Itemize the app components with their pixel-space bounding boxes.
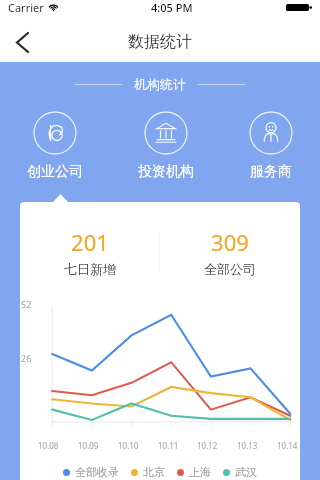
staticText: 10.08: [38, 440, 59, 451]
button[interactable]: 服务商: [243, 109, 299, 183]
button[interactable]: 上海: [177, 463, 211, 480]
staticText: 服务商: [250, 163, 292, 181]
staticText: 52: [21, 298, 32, 310]
button[interactable]: 全部收录: [63, 463, 119, 480]
staticText: 武汉: [235, 465, 257, 479]
staticText: 10.11: [158, 440, 179, 451]
staticText: 201: [71, 227, 109, 257]
staticText: 数据统计: [128, 32, 192, 52]
button[interactable]: 武汉: [223, 463, 257, 480]
staticText: Carrier: [8, 0, 44, 15]
button[interactable]: 北京: [131, 463, 165, 480]
staticText: 机构统计: [134, 76, 186, 92]
button[interactable]: 创业公司: [21, 109, 89, 183]
staticText: 北京: [143, 465, 165, 479]
staticText: 全部收录: [75, 465, 119, 479]
button[interactable]: 201: [20, 227, 159, 277]
staticText: 全部公司: [204, 261, 256, 277]
staticText: 投资机构: [138, 163, 194, 181]
staticText: 上海: [189, 465, 211, 479]
staticText: 10.14: [277, 440, 298, 451]
staticText: 26: [21, 352, 32, 364]
button[interactable]: 投资机构: [132, 109, 200, 183]
staticText: 10.12: [197, 440, 218, 451]
staticText: 七日新增: [64, 261, 116, 277]
staticText: 10.09: [78, 440, 99, 451]
staticText: 10.10: [118, 440, 139, 451]
button[interactable]: 309: [160, 227, 300, 277]
button[interactable]: Back: [0, 22, 44, 62]
staticText: 4:05 PM: [151, 0, 193, 15]
staticText: 309: [211, 227, 249, 257]
staticText: 10.13: [237, 440, 258, 451]
staticText: 创业公司: [27, 163, 83, 181]
